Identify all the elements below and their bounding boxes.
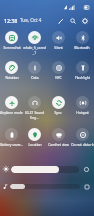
button[interactable]: Flashlight xyxy=(70,61,94,80)
button[interactable]: Bluetooth xyxy=(70,31,94,55)
staticText: NFC xyxy=(55,75,62,79)
staticText: Airplane mode xyxy=(0,110,23,114)
button[interactable]: Battery saver... xyxy=(0,128,23,152)
staticText: Data xyxy=(31,75,39,79)
staticText: whale_fi_cared_1 xyxy=(23,45,46,55)
button[interactable]: Auto brightness xyxy=(82,165,90,173)
button[interactable]: Edit xyxy=(56,16,65,25)
button[interactable]: Airplane mode xyxy=(0,96,23,120)
staticText: Tue, Oct 4 xyxy=(20,17,42,23)
button[interactable]: Do not disturb xyxy=(70,128,94,152)
button[interactable]: whale_fi_cared_1 xyxy=(23,31,46,55)
button[interactable] xyxy=(11,166,79,173)
staticText: Flashlight xyxy=(75,75,90,79)
button[interactable] xyxy=(10,184,80,189)
button[interactable]: Search xyxy=(68,16,77,25)
staticText: Sync xyxy=(54,110,62,114)
staticText: Do not disturb xyxy=(71,142,94,146)
button[interactable]: Silent xyxy=(46,31,70,55)
staticText: Screenshot xyxy=(3,45,21,49)
button[interactable]: Data xyxy=(23,61,46,80)
button[interactable]: LG-X1 Sound Eng... xyxy=(23,96,46,120)
button[interactable]: Screenshot xyxy=(0,31,23,55)
staticText: Silent xyxy=(54,45,63,49)
staticText: 12:38 xyxy=(4,17,18,24)
button[interactable]: Output device xyxy=(83,183,90,190)
button[interactable]: Rotation xyxy=(0,61,23,80)
button[interactable]: Hotspot xyxy=(70,96,94,120)
staticText: Battery saver... xyxy=(0,142,23,146)
button[interactable]: Sync xyxy=(46,96,70,120)
button[interactable]: Location xyxy=(23,128,46,152)
staticText: Location xyxy=(28,142,42,146)
staticText: Bluetooth xyxy=(74,45,90,49)
staticText: Rotation xyxy=(5,75,19,79)
staticText: LG-X1 Sound Eng... xyxy=(23,110,46,120)
staticText: Hotspot xyxy=(76,110,89,114)
staticText: Comfort view xyxy=(48,142,69,146)
button[interactable]: NFC xyxy=(46,61,70,80)
button[interactable]: Comfort view xyxy=(46,128,70,152)
button[interactable]: Settings xyxy=(80,16,89,25)
